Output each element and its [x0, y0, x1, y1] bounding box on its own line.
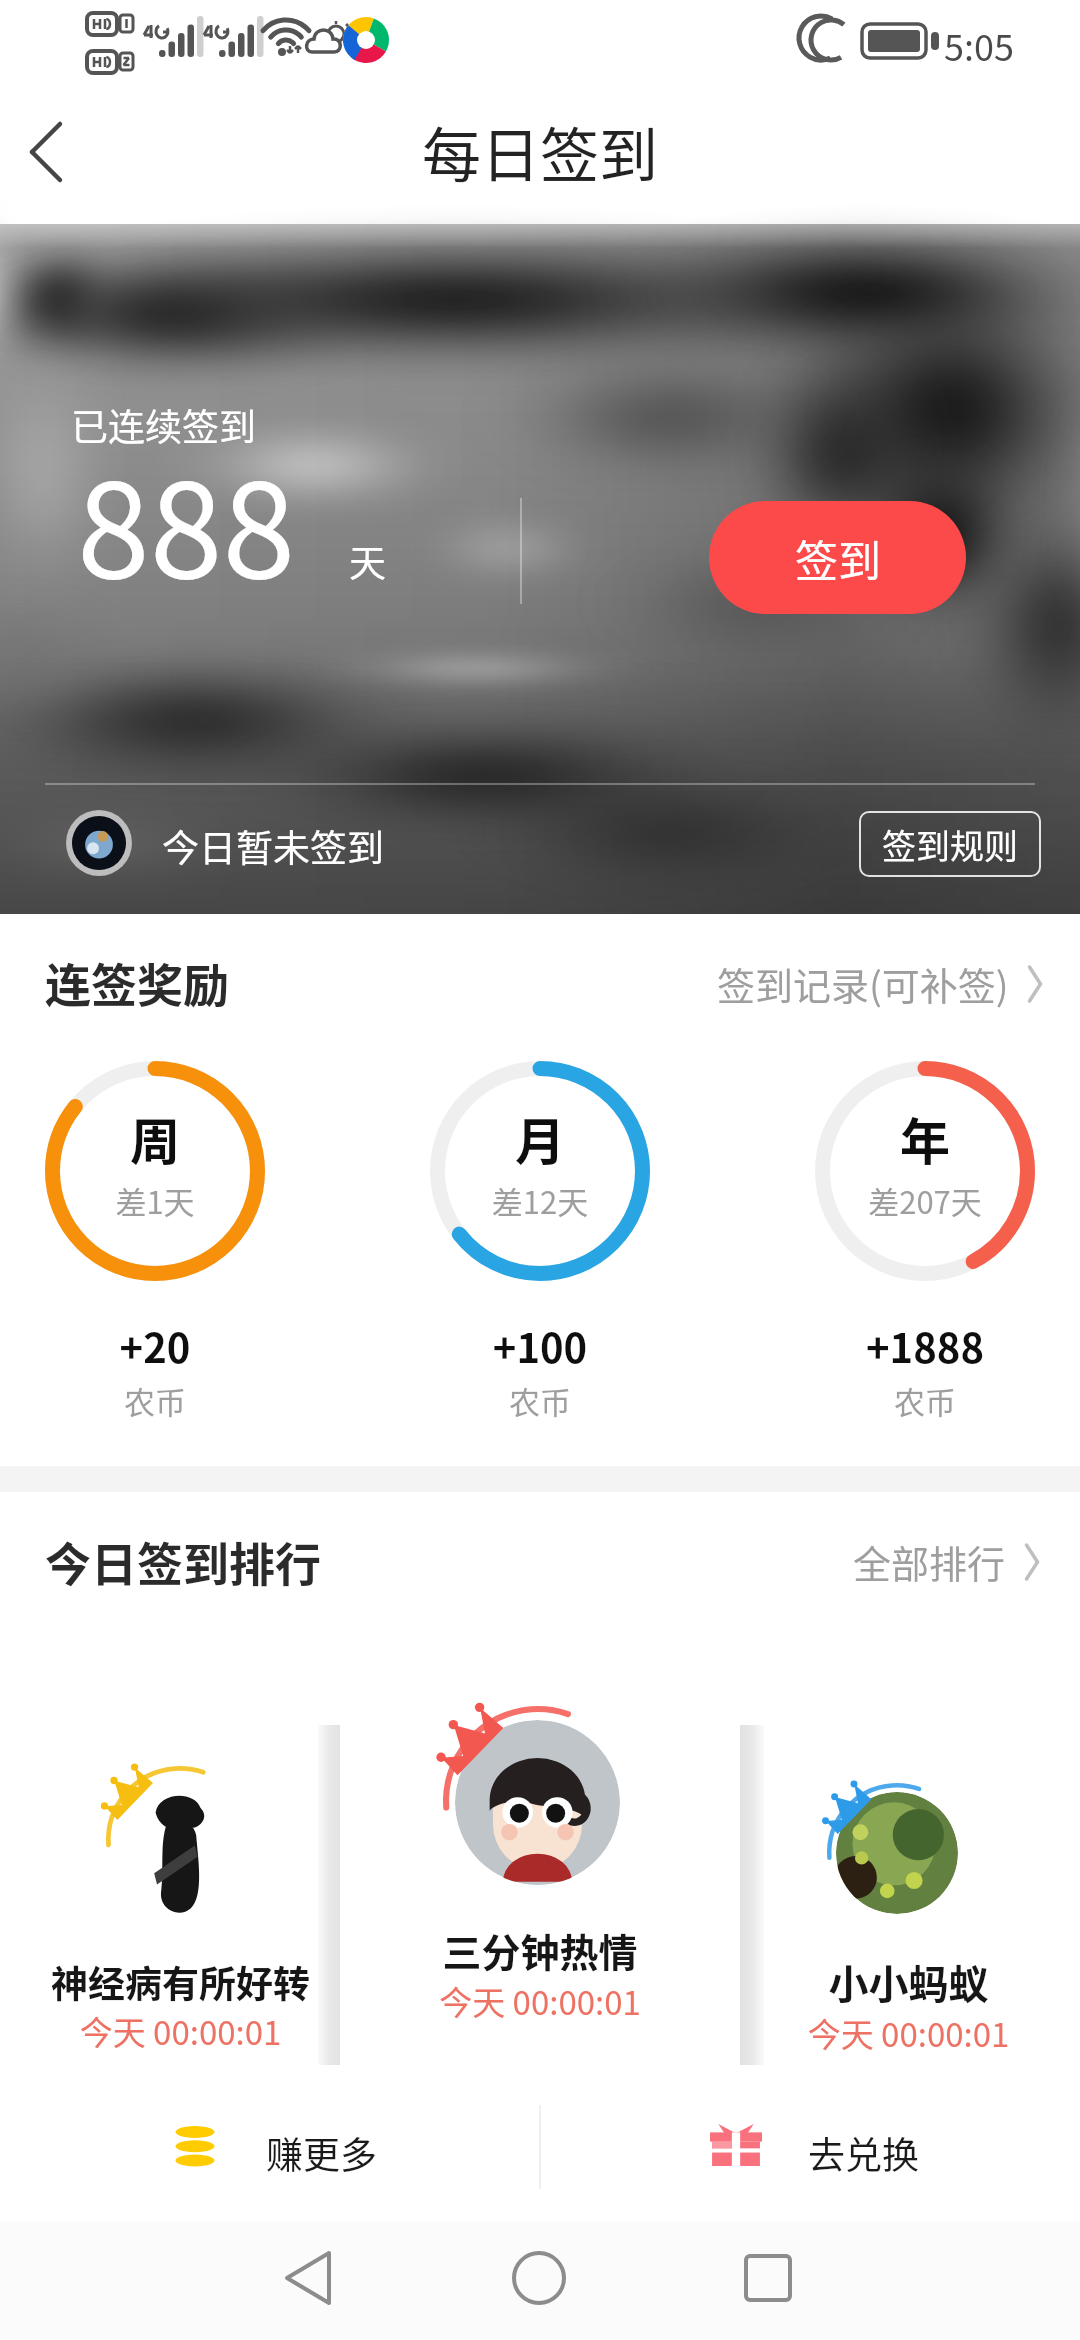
- staticText: 周: [95, 1102, 215, 1174]
- staticText: 天: [349, 534, 386, 588]
- button[interactable]: 签到: [709, 501, 966, 614]
- button[interactable]: 签到规则: [859, 811, 1041, 877]
- button[interactable]: Back: [249, 2221, 369, 2340]
- staticText: 赚更多: [266, 2126, 377, 2180]
- button[interactable]: 赚更多: [0, 2065, 540, 2221]
- staticText: 农币: [45, 1378, 265, 1423]
- button[interactable]: [757, 1725, 1060, 2065]
- button[interactable]: 全部排行: [853, 1534, 1052, 1589]
- staticText: +1888: [815, 1317, 1035, 1375]
- staticText: 差12天: [460, 1178, 620, 1223]
- staticText: 今天 00:00:01: [340, 1977, 740, 2025]
- staticText: 农币: [430, 1378, 650, 1423]
- staticText: 5:05: [944, 19, 1014, 71]
- staticText: 今天 00:00:01: [18, 2007, 343, 2055]
- staticText: 月: [480, 1102, 600, 1174]
- staticText: 去兑换: [808, 2126, 919, 2180]
- staticText: +20: [45, 1317, 265, 1375]
- staticText: +100: [430, 1317, 650, 1375]
- button[interactable]: Home: [479, 2221, 599, 2340]
- button[interactable]: Back: [10, 88, 86, 224]
- staticText: 每日签到: [422, 109, 659, 194]
- staticText: 三分钟热情: [340, 1922, 740, 1978]
- staticText: 小小蚂蚁: [757, 1953, 1060, 2011]
- button[interactable]: 去兑换: [540, 2065, 1080, 2221]
- staticText: 连签奖励: [45, 949, 229, 1016]
- staticText: 全部排行: [853, 1534, 1006, 1589]
- staticText: 差207天: [845, 1178, 1005, 1223]
- staticText: 今日签到排行: [45, 1528, 321, 1595]
- staticText: 888: [77, 426, 296, 616]
- staticText: 今日暂未签到: [162, 819, 384, 873]
- button[interactable]: 签到记录(可补签): [717, 956, 1055, 1011]
- staticText: 神经病有所好转: [18, 1955, 343, 2009]
- button[interactable]: Recent apps: [708, 2221, 828, 2340]
- staticText: 签到规则: [882, 820, 1018, 869]
- staticText: 农币: [815, 1378, 1035, 1423]
- staticText: 签到记录(可补签): [717, 956, 1009, 1011]
- staticText: 今天 00:00:01: [757, 2009, 1060, 2057]
- button[interactable]: [18, 1725, 343, 2065]
- staticText: 差1天: [75, 1178, 235, 1223]
- staticText: 年: [865, 1102, 985, 1174]
- staticText: 已连续签到: [71, 398, 256, 452]
- button[interactable]: [340, 1621, 740, 2065]
- staticText: 签到: [795, 527, 881, 589]
